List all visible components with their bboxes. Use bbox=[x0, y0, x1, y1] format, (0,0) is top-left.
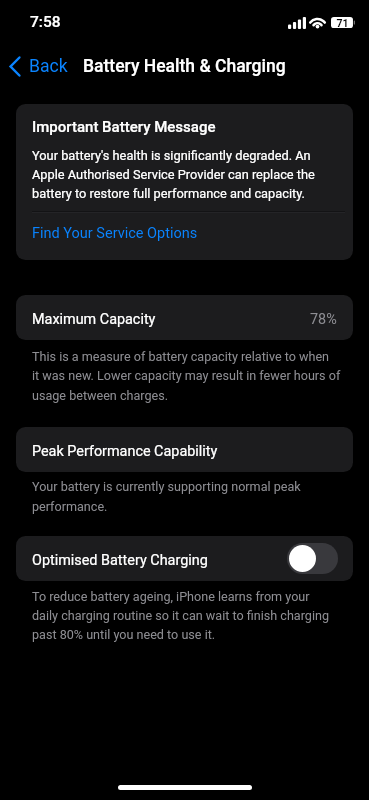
staticText: Find Your Service Options bbox=[32, 225, 198, 242]
staticText: 7:58 bbox=[30, 13, 61, 31]
staticText: Your battery's health is significantly d… bbox=[32, 148, 315, 202]
button[interactable]: Find Your Service Options bbox=[32, 225, 198, 242]
staticText: Important Battery Message bbox=[32, 118, 216, 136]
staticText: 78% bbox=[310, 311, 337, 328]
staticText: Optimised Battery Charging bbox=[32, 552, 208, 569]
staticText: Peak Performance Capability bbox=[32, 443, 218, 460]
staticText: 71 bbox=[334, 17, 351, 29]
button[interactable]: Optimised Battery Charging toggle bbox=[287, 543, 338, 574]
button[interactable]: Peak Performance Capability bbox=[16, 427, 353, 472]
staticText: This is a measure of battery capacity re… bbox=[32, 349, 341, 404]
button[interactable]: Back bbox=[4, 44, 68, 88]
staticText: Back bbox=[29, 56, 68, 77]
button[interactable]: Maximum Capacity bbox=[16, 295, 353, 340]
staticText: Battery Health & Charging bbox=[83, 56, 286, 77]
staticText: Your battery is currently supporting nor… bbox=[32, 479, 301, 514]
staticText: Maximum Capacity bbox=[32, 311, 156, 328]
staticText: To reduce battery ageing, iPhone learns … bbox=[32, 589, 329, 642]
